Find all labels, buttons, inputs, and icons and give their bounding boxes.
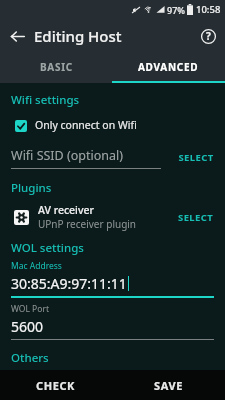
button[interactable]: SELECT [167,151,225,169]
button[interactable]: CHECK [0,370,112,400]
staticText: Editing Host [34,26,122,46]
staticText: 5600 [11,317,44,336]
staticText: ADVANCED [138,60,199,74]
staticText: 30:85:A9:97:11:11 [11,274,127,293]
staticText: Others [11,350,49,366]
staticText: Mac Address [11,260,62,272]
staticText: SAVE [154,378,183,393]
button[interactable]: SAVE [112,370,225,400]
staticText: AV receiver [38,203,94,217]
button[interactable]: Only connect on Wifi [0,116,225,134]
staticText: WOL settings [11,240,84,256]
staticText: Wifi SSID (optional) [11,147,123,164]
staticText: 10:58 [196,3,221,16]
staticText: CHECK [36,378,76,393]
button[interactable]: BASIC [0,53,112,81]
staticText: ? [206,29,211,43]
button[interactable]: AV receiver [0,203,225,231]
staticText: 97% [167,4,185,16]
button[interactable]: Mac Address [0,260,225,298]
button[interactable]: SELECT [167,211,225,224]
button[interactable]: ADVANCED [112,53,225,81]
staticText: SELECT [178,211,214,224]
staticText: UPnP receiver plugin [38,217,137,231]
staticText: Plugins [11,180,52,196]
button[interactable]: Help [191,19,225,53]
staticText: BASIC [40,60,73,74]
staticText: SELECT [178,151,214,164]
button[interactable]: Back [0,19,34,53]
staticText: Wifi settings [11,92,80,108]
button[interactable]: WOL Port [0,303,225,340]
staticText: Only connect on Wifi [35,118,137,132]
staticText: WOL Port [11,303,49,315]
